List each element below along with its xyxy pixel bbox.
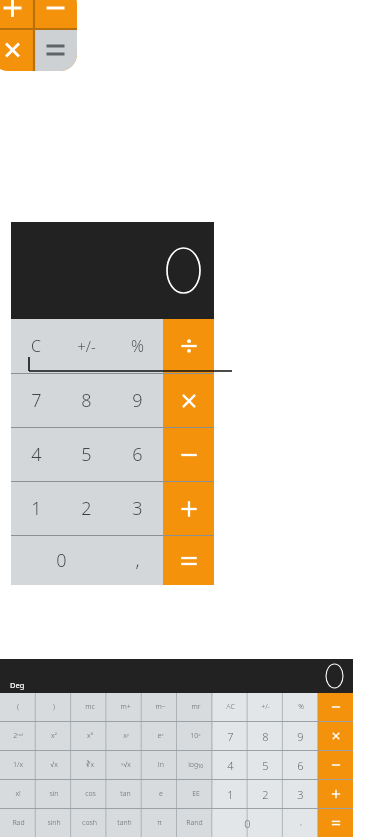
button[interactable]: tanh (107, 809, 142, 837)
staticText: 8 (81, 388, 92, 413)
staticText: ∛x (86, 760, 94, 770)
staticText: x³ (87, 731, 93, 741)
button[interactable]: 1 (11, 482, 61, 535)
button[interactable]: 5 (61, 428, 112, 481)
button[interactable]: π (142, 809, 177, 837)
button[interactable]: , (283, 809, 318, 837)
staticText: 5 (262, 758, 269, 773)
staticText: sin (49, 789, 59, 799)
button[interactable]: 8 (248, 722, 283, 750)
button[interactable]: 9 (283, 722, 318, 750)
button[interactable] (318, 722, 353, 750)
staticText: log₁₀ (188, 760, 203, 770)
staticText: xʸ (123, 731, 129, 741)
button[interactable]: Rad (0, 809, 36, 837)
staticText: π (157, 818, 162, 828)
button[interactable]: 2ⁿᵈ (0, 722, 36, 750)
button[interactable]: x² (36, 722, 72, 750)
staticText: , (300, 818, 302, 828)
staticText: m− (155, 702, 166, 712)
staticText: e (159, 789, 163, 799)
button[interactable]: Rand (177, 809, 212, 837)
button[interactable]: m+ (108, 693, 143, 721)
button[interactable]: m− (143, 693, 178, 721)
staticText: +/- (261, 702, 270, 712)
button[interactable]: 7 (11, 374, 61, 427)
button[interactable]: 2 (61, 482, 112, 535)
button[interactable]: eˣ (143, 722, 178, 750)
button[interactable]: xʸ (108, 722, 143, 750)
button[interactable]: ( (0, 693, 36, 721)
button[interactable]: Calculator app icon (0, 0, 77, 71)
button[interactable] (318, 693, 353, 721)
button[interactable]: 2 (248, 780, 283, 808)
button[interactable]: % (112, 319, 163, 373)
button[interactable]: mr (178, 693, 213, 721)
button[interactable]: 8 (61, 374, 112, 427)
button[interactable]: cosh (72, 809, 107, 837)
button[interactable]: 3 (283, 780, 318, 808)
button[interactable]: C (11, 319, 61, 373)
button[interactable]: 7 (213, 722, 248, 750)
button[interactable]: log₁₀ (178, 751, 213, 779)
staticText: 0 (244, 816, 251, 831)
staticText: 5 (81, 442, 92, 467)
staticText: 3 (297, 787, 304, 802)
button[interactable]: sinh (36, 809, 72, 837)
staticText: % (131, 335, 144, 357)
button[interactable]: 3 (112, 482, 163, 535)
staticText: 2 (81, 496, 92, 521)
button[interactable] (163, 536, 214, 585)
button[interactable]: mc (72, 693, 108, 721)
button[interactable]: √x (36, 751, 72, 779)
button[interactable]: ʸ√x (108, 751, 143, 779)
button[interactable]: ) (36, 693, 72, 721)
button[interactable]: x³ (72, 722, 108, 750)
button[interactable]: 0 (212, 809, 283, 837)
button[interactable]: , (112, 536, 163, 585)
button[interactable] (163, 428, 214, 481)
button[interactable] (163, 319, 214, 373)
button[interactable]: 6 (283, 751, 318, 779)
staticText: 3 (132, 496, 143, 521)
button[interactable]: tan (108, 780, 143, 808)
staticText: 7 (31, 388, 42, 413)
button[interactable]: 4 (213, 751, 248, 779)
button[interactable] (163, 374, 214, 427)
button[interactable]: 1 (213, 780, 248, 808)
staticText: tanh (117, 818, 132, 828)
staticText: 2ⁿᵈ (13, 731, 23, 741)
button[interactable]: ∛x (72, 751, 108, 779)
staticText: Rand (186, 818, 203, 828)
button[interactable]: +/- (61, 319, 112, 373)
staticText: , (135, 548, 140, 573)
button[interactable]: ln (143, 751, 178, 779)
button[interactable]: 9 (112, 374, 163, 427)
button[interactable]: 1/x (0, 751, 36, 779)
button[interactable] (318, 780, 353, 808)
staticText: m+ (120, 702, 131, 712)
button[interactable] (318, 809, 353, 837)
button[interactable]: 0 (11, 536, 112, 585)
button[interactable]: cos (72, 780, 108, 808)
staticText: 2 (262, 787, 269, 802)
button[interactable]: EE (178, 780, 213, 808)
button[interactable] (163, 482, 214, 535)
button[interactable]: sin (36, 780, 72, 808)
button[interactable]: 4 (11, 428, 61, 481)
button[interactable]: % (283, 693, 318, 721)
button[interactable]: 10ˣ (178, 722, 213, 750)
staticText: +/- (77, 336, 96, 356)
button[interactable]: e (143, 780, 178, 808)
button[interactable]: 5 (248, 751, 283, 779)
button[interactable]: x! (0, 780, 36, 808)
button[interactable] (318, 751, 353, 779)
staticText: √x (50, 760, 58, 770)
staticText: cos (85, 789, 96, 799)
button[interactable]: AC (213, 693, 248, 721)
button[interactable]: +/- (248, 693, 283, 721)
staticText: 6 (297, 758, 304, 773)
staticText: Deg (10, 680, 25, 690)
staticText: mr (191, 702, 201, 712)
button[interactable]: 6 (112, 428, 163, 481)
